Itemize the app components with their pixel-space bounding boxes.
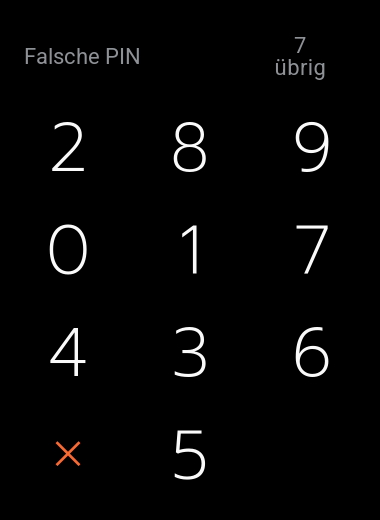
- button[interactable]: 5: [129, 404, 251, 507]
- staticText: 6: [292, 302, 332, 404]
- staticText: übrig: [274, 54, 326, 80]
- staticText: 5: [171, 404, 209, 507]
- button[interactable]: Delete: [7, 404, 129, 507]
- staticText: 1: [178, 199, 201, 302]
- button[interactable]: 0: [7, 199, 129, 302]
- staticText: 3: [171, 302, 209, 404]
- staticText: Falsche PIN: [24, 43, 141, 69]
- staticText: 2: [48, 97, 87, 199]
- button[interactable]: 1: [129, 199, 251, 302]
- staticText: 7: [294, 33, 306, 58]
- button[interactable]: 3: [129, 302, 251, 404]
- staticText: 9: [292, 97, 332, 199]
- staticText: 0: [46, 199, 90, 302]
- button[interactable]: 9: [251, 97, 373, 199]
- button[interactable]: 4: [7, 302, 129, 404]
- staticText: 8: [170, 97, 210, 199]
- button[interactable]: 7: [251, 199, 373, 302]
- button[interactable]: 8: [129, 97, 251, 199]
- button[interactable]: 6: [251, 302, 373, 404]
- button[interactable]: 2: [7, 97, 129, 199]
- staticText: 4: [48, 302, 88, 404]
- staticText: 7: [293, 199, 330, 302]
